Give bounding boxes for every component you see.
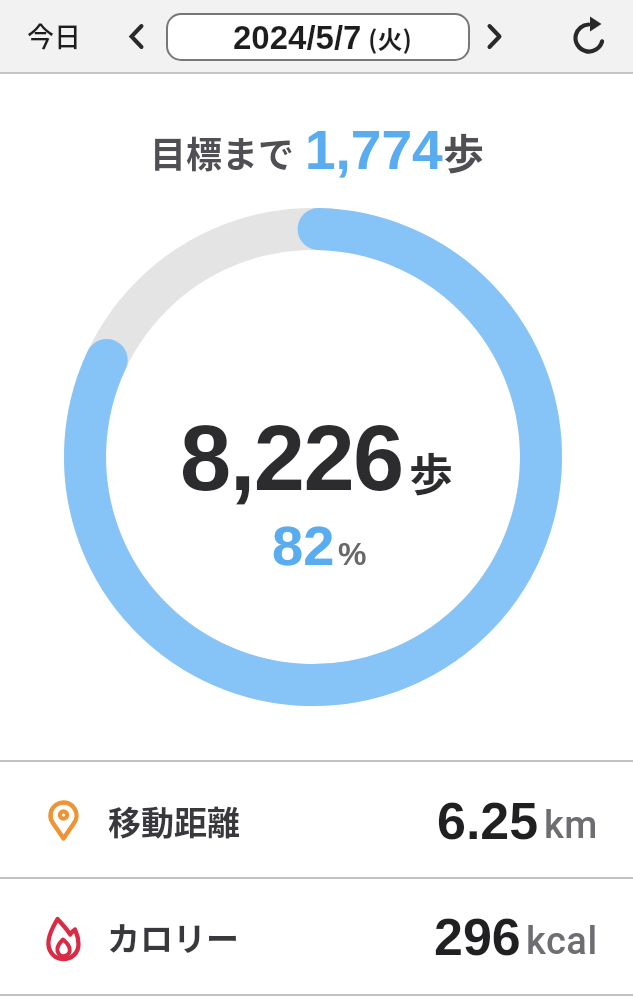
staticText: km xyxy=(544,803,598,848)
staticText: % xyxy=(338,536,367,572)
staticText: kcal xyxy=(526,919,598,964)
staticText: 8,226 xyxy=(180,407,403,510)
staticText: 296 xyxy=(434,908,521,966)
staticText: 6.25 xyxy=(437,792,539,850)
staticText: 歩 xyxy=(443,121,484,180)
staticText: 歩 xyxy=(409,440,453,504)
staticText: 1,774 xyxy=(305,119,443,180)
staticText: 82 xyxy=(272,514,335,577)
staticText: 目標まで xyxy=(150,126,295,178)
staticText: 移動距離 xyxy=(108,797,240,845)
staticText: 2024/5/7 xyxy=(233,19,362,56)
staticText: (火) xyxy=(368,20,412,56)
staticText: 今日 xyxy=(27,16,81,55)
staticText: カロリー xyxy=(107,913,239,961)
